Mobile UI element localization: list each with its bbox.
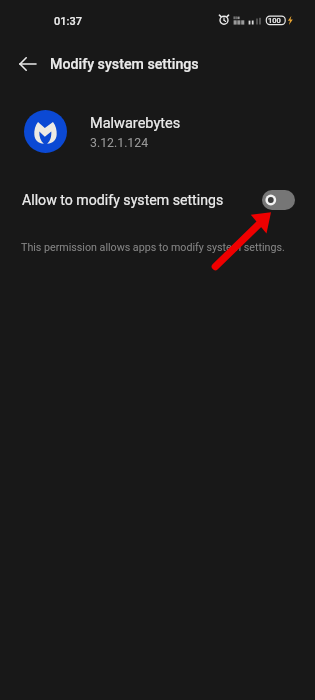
staticText: Allow to modify system settings (22, 192, 224, 209)
staticText: Malwarebytes (90, 115, 181, 132)
button[interactable]: Allow to modify system settings (0, 178, 315, 222)
staticText: This permission allows apps to modify sy… (21, 241, 285, 254)
staticText: 100 (268, 16, 281, 25)
button[interactable]: Back (12, 48, 44, 80)
staticText: 01:37 (54, 15, 82, 28)
staticText: 3.12.1.124 (90, 136, 149, 150)
staticText: Modify system settings (50, 56, 199, 73)
